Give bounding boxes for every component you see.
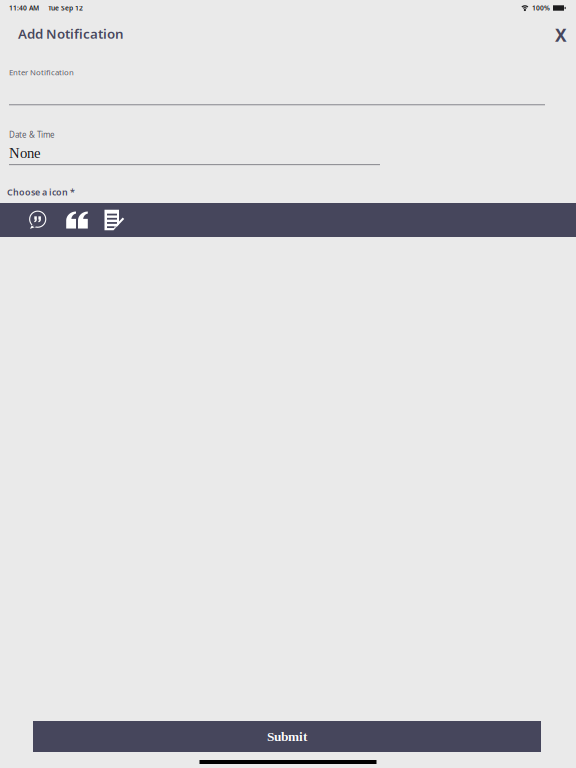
button[interactable]: Quotation mark icon (57, 203, 97, 237)
staticText: 100% (532, 4, 550, 12)
staticText: 11:40 AM (9, 4, 39, 12)
staticText: Date & Time (9, 129, 55, 140)
staticText: None (9, 145, 41, 161)
button[interactable]: Submit (33, 721, 541, 752)
button[interactable]: Close (547, 21, 575, 49)
staticText: Choose a icon * (7, 186, 75, 198)
staticText: X (555, 23, 567, 46)
button[interactable]: Note icon (97, 203, 133, 237)
button[interactable]: Speech bubble icon (19, 203, 57, 237)
button[interactable]: Enter Notification (0, 67, 576, 105)
staticText: Enter Notification (9, 67, 74, 77)
staticText: Tue Sep 12 (48, 4, 83, 12)
button[interactable]: Date & Time (0, 129, 576, 165)
staticText: Add Notification (18, 25, 124, 42)
staticText: Submit (267, 729, 307, 744)
